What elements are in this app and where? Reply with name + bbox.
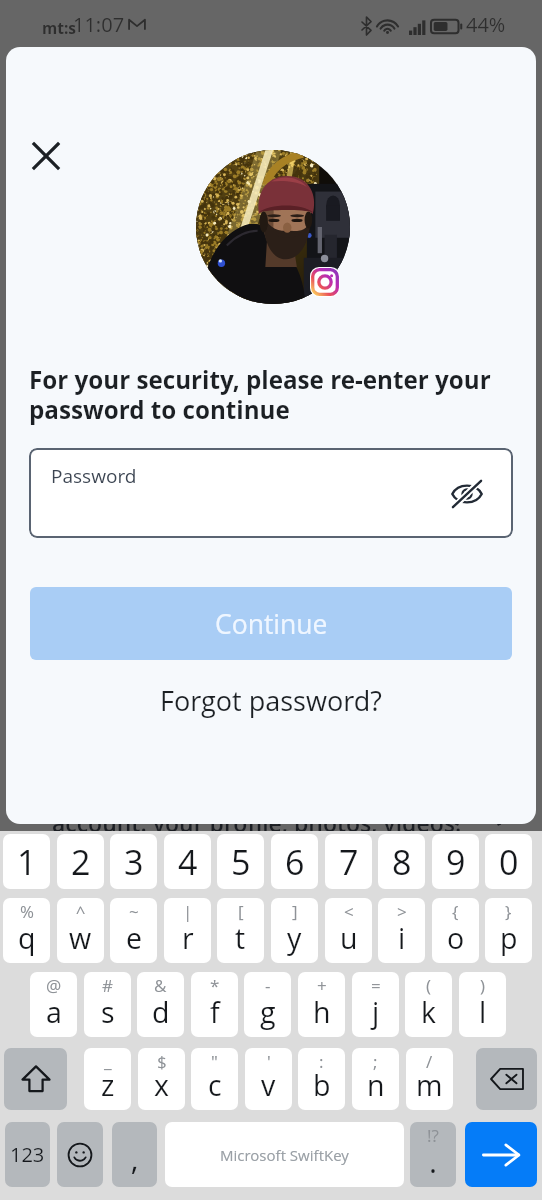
staticText: r	[182, 919, 194, 958]
button[interactable]: Show password	[445, 472, 489, 516]
button[interactable]: 2	[57, 834, 104, 889]
button[interactable]: Enter	[465, 1122, 537, 1187]
button[interactable]: =	[352, 972, 399, 1037]
staticText: 2	[71, 839, 91, 885]
button[interactable]: 3	[110, 834, 157, 889]
button[interactable]: ]	[271, 898, 318, 963]
button[interactable]: Emoji	[57, 1122, 103, 1187]
button[interactable]: 6	[271, 834, 318, 889]
button[interactable]: Forgot password?	[151, 675, 391, 725]
button[interactable]: )	[459, 972, 506, 1037]
staticText: 8	[392, 839, 412, 885]
button[interactable]: [	[217, 898, 264, 963]
staticText: |	[183, 900, 193, 923]
staticText: [	[238, 900, 244, 923]
staticText: >	[397, 900, 407, 923]
button[interactable]: #	[84, 972, 131, 1037]
staticText: l	[479, 993, 487, 1032]
staticText: For your security, please re-enter your …	[29, 363, 521, 426]
button[interactable]: $	[138, 1048, 185, 1110]
button[interactable]: /	[406, 1048, 453, 1110]
staticText: t	[235, 919, 246, 958]
staticText: 44%	[466, 11, 506, 38]
staticText: b	[313, 1066, 331, 1105]
staticText: mt:s	[42, 17, 77, 38]
staticText: -	[265, 974, 271, 997]
button[interactable]: ~	[110, 898, 157, 963]
button[interactable]: ^	[57, 898, 104, 963]
staticText: }	[505, 900, 512, 923]
staticText: ~	[129, 900, 139, 923]
button[interactable]: Microsoft SwiftKey	[165, 1122, 404, 1187]
staticText: j	[372, 993, 380, 1032]
button[interactable]: (	[405, 972, 452, 1037]
button[interactable]: 8	[378, 834, 425, 889]
staticText: =	[371, 974, 381, 997]
button[interactable]: |	[164, 898, 211, 963]
staticText: o	[447, 919, 465, 958]
button[interactable]: -	[244, 972, 291, 1037]
button[interactable]: "	[191, 1048, 238, 1110]
staticText: 3	[124, 839, 144, 885]
button[interactable]: '	[245, 1048, 292, 1110]
button[interactable]: 1	[3, 834, 50, 889]
staticText: s	[101, 993, 115, 1032]
staticText: 123	[10, 1141, 45, 1168]
staticText: g	[260, 993, 276, 1032]
staticText: #	[102, 974, 113, 997]
button[interactable]: @	[30, 972, 77, 1037]
button[interactable]: Password	[29, 448, 513, 538]
staticText: /	[426, 1050, 433, 1073]
staticText: _	[104, 1050, 112, 1073]
staticText: i	[398, 919, 406, 958]
button[interactable]: 0	[485, 834, 532, 889]
staticText: )	[480, 974, 486, 997]
button[interactable]: 5	[217, 834, 264, 889]
staticText: w	[69, 919, 92, 958]
button[interactable]: <	[325, 898, 372, 963]
button[interactable]: 4	[164, 834, 211, 889]
button[interactable]: {	[432, 898, 479, 963]
staticText: 6	[285, 839, 305, 885]
button[interactable]: >	[378, 898, 425, 963]
staticText: "	[211, 1050, 218, 1073]
button[interactable]: _	[84, 1048, 131, 1110]
button[interactable]: +	[298, 972, 345, 1037]
button[interactable]: 123	[5, 1122, 50, 1187]
button[interactable]: Backspace	[476, 1048, 537, 1110]
button[interactable]: ,	[112, 1122, 157, 1187]
staticText: account: your profile, photos, videos.	[52, 807, 462, 838]
button[interactable]: !?	[410, 1122, 456, 1187]
staticText: 0	[499, 839, 519, 885]
staticText: v	[261, 1066, 276, 1105]
staticText: ]	[292, 900, 298, 923]
staticText: y	[287, 919, 302, 958]
staticText: z	[101, 1066, 115, 1105]
staticText: 11:07	[73, 11, 125, 38]
staticText: .	[429, 1141, 437, 1182]
button[interactable]: 9	[432, 834, 479, 889]
staticText: *	[210, 974, 220, 997]
button[interactable]: &	[137, 972, 184, 1037]
staticText: n	[367, 1066, 385, 1105]
staticText: +	[317, 974, 327, 997]
staticText: h	[313, 993, 331, 1032]
button[interactable]: *	[191, 972, 238, 1037]
staticText: k	[421, 993, 436, 1032]
button[interactable]: Continue	[30, 587, 512, 660]
staticText: 1	[17, 839, 37, 885]
staticText: ^	[76, 900, 86, 923]
staticText: x	[154, 1066, 169, 1105]
button[interactable]: Shift	[4, 1048, 67, 1110]
button[interactable]: %	[3, 898, 50, 963]
staticText: <	[344, 900, 354, 923]
staticText: m	[416, 1066, 443, 1105]
staticText: $	[157, 1050, 167, 1073]
button[interactable]: ;	[352, 1048, 399, 1110]
button[interactable]: Close	[24, 134, 68, 178]
staticText: Microsoft SwiftKey	[220, 1145, 349, 1165]
button[interactable]: 7	[325, 834, 372, 889]
staticText: q	[18, 919, 36, 958]
button[interactable]: :	[298, 1048, 345, 1110]
button[interactable]: }	[485, 898, 532, 963]
